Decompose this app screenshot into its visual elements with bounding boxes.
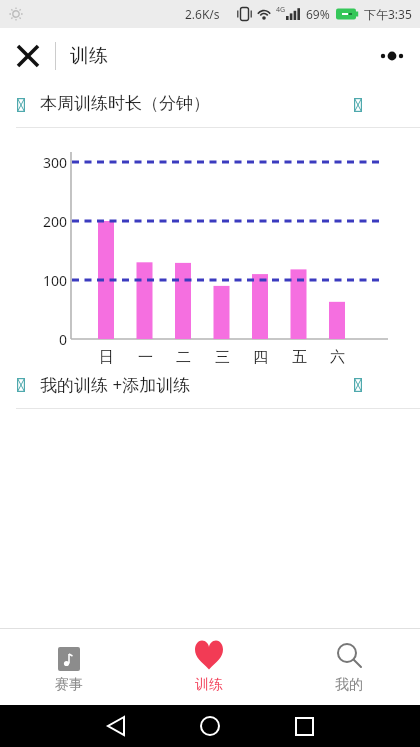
staticText: 2.6K/s	[185, 6, 220, 22]
button[interactable]	[86, 705, 146, 747]
staticText: 300	[43, 153, 68, 172]
staticText: 我的训练 +添加训练	[40, 373, 191, 396]
staticText: 三	[215, 348, 230, 367]
staticText: 4G	[276, 5, 286, 15]
button[interactable]	[372, 42, 412, 70]
staticText: 赛事	[55, 676, 83, 694]
button[interactable]: 赛事	[0, 628, 140, 705]
button[interactable]	[14, 43, 42, 69]
staticText: 69%	[306, 6, 330, 22]
staticText: 二	[176, 348, 191, 367]
button[interactable]	[180, 705, 240, 747]
staticText: 六	[330, 348, 345, 367]
staticText: 0	[59, 330, 68, 349]
staticText: 训练	[195, 676, 223, 694]
button[interactable]: 我的训练 +添加训练	[0, 365, 420, 405]
staticText: 训练	[70, 44, 108, 68]
staticText: 四	[253, 348, 268, 367]
button[interactable]: 本周训练时长（分钟）	[0, 88, 420, 122]
staticText: 200	[43, 212, 68, 231]
staticText: 100	[43, 271, 68, 290]
staticText: 我的	[335, 676, 363, 694]
staticText: 本周训练时长（分钟）	[40, 93, 210, 114]
button[interactable]	[274, 705, 334, 747]
staticText: 一	[138, 348, 153, 367]
button[interactable]: 训练	[140, 628, 280, 705]
staticText: 下午3:35	[364, 6, 412, 22]
button[interactable]: 我的	[280, 628, 420, 705]
staticText: 五	[292, 348, 307, 367]
staticText: 日	[99, 348, 114, 367]
